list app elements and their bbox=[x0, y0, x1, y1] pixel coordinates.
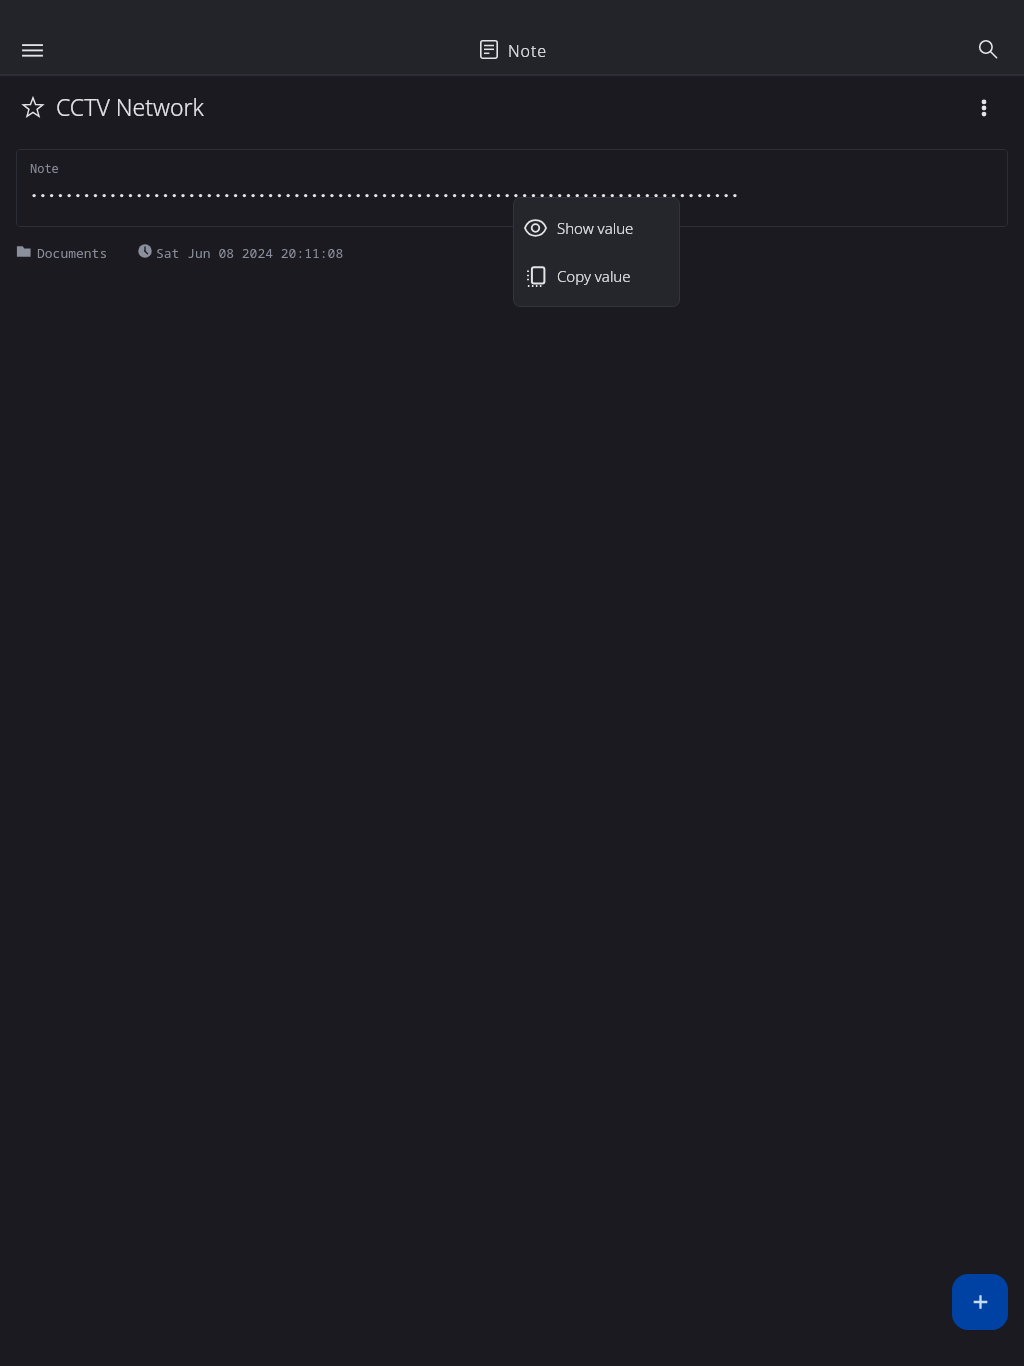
button[interactable]: Add note bbox=[952, 1274, 1008, 1330]
button[interactable]: Note bbox=[16, 149, 1008, 227]
button[interactable]: CCTV Network bbox=[22, 85, 204, 129]
staticText: CCTV Network bbox=[56, 91, 204, 122]
button[interactable]: More options bbox=[962, 86, 1006, 130]
staticText: Copy value bbox=[557, 266, 631, 286]
staticText: Documents bbox=[37, 244, 108, 258]
button[interactable]: Search bbox=[962, 23, 1010, 71]
button[interactable]: Navigation menu bbox=[8, 26, 56, 74]
staticText: Note bbox=[30, 160, 59, 176]
staticText: Note bbox=[508, 40, 547, 62]
staticText: Sat Jun 08 2024 20:11:08 bbox=[156, 244, 344, 258]
staticText: Show value bbox=[557, 218, 634, 238]
button[interactable]: Show value bbox=[513, 204, 680, 252]
button[interactable]: Copy value bbox=[513, 252, 680, 300]
